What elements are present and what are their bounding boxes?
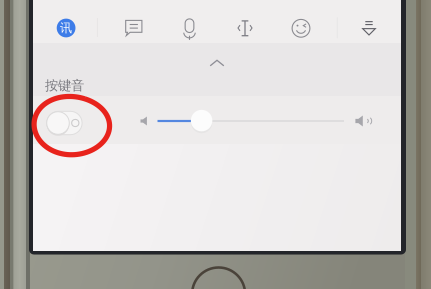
button[interactable]: Emoji [278,7,324,50]
staticText: 讯 [60,21,72,35]
button[interactable]: Key sound [44,109,84,137]
button[interactable]: Chat [111,7,157,50]
button[interactable]: Input method [41,6,91,49]
button[interactable]: Voice input [166,8,212,51]
staticText: 按键音 [45,77,84,94]
button[interactable]: Move cursor [222,7,268,50]
button[interactable]: Hide keyboard [344,7,394,50]
